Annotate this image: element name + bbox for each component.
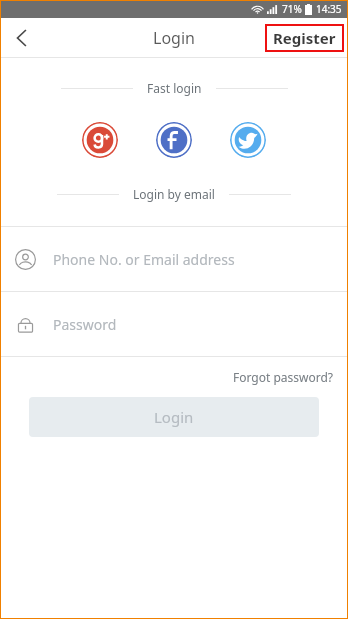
button[interactable]: Sign in with Twitter — [230, 122, 266, 158]
staticText: 14:35 — [316, 2, 342, 16]
staticText: Fast login — [147, 80, 202, 96]
button[interactable]: Phone No. or Email address — [0, 227, 348, 291]
button[interactable]: Login — [29, 397, 319, 437]
button[interactable]: Register — [265, 24, 344, 52]
staticText: Login — [153, 27, 195, 49]
staticText: Password — [53, 315, 117, 334]
staticText: Phone No. or Email address — [53, 250, 235, 269]
button[interactable]: Sign in with Facebook — [156, 122, 192, 158]
staticText: Register — [273, 28, 336, 48]
button[interactable]: Password — [0, 292, 348, 356]
staticText: Login — [154, 407, 194, 427]
staticText: Login by email — [133, 186, 215, 202]
button[interactable]: Sign in with Google — [82, 122, 118, 158]
staticText: Forgot password? — [233, 369, 334, 385]
button[interactable]: Forgot password? — [219, 365, 348, 389]
staticText: 71% — [282, 2, 302, 16]
button[interactable]: Back — [0, 18, 44, 58]
